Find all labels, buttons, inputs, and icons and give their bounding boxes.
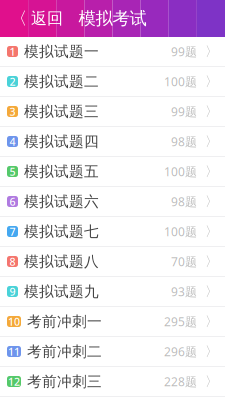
staticText: 〉 bbox=[205, 283, 218, 300]
staticText: 7 bbox=[9, 224, 15, 239]
staticText: 模拟试题七 bbox=[24, 222, 99, 240]
staticText: 296题 bbox=[164, 343, 197, 359]
staticText: 100题 bbox=[164, 163, 197, 179]
button[interactable]: 1 bbox=[0, 37, 225, 67]
staticText: 模拟试题九 bbox=[24, 282, 99, 300]
staticText: 70题 bbox=[171, 253, 197, 269]
staticText: 〉 bbox=[205, 163, 218, 180]
staticText: 〉 bbox=[205, 43, 218, 60]
staticText: 模拟试题四 bbox=[24, 132, 99, 150]
button[interactable]: 12 bbox=[0, 367, 225, 397]
staticText: 98题 bbox=[171, 193, 197, 209]
button[interactable]: 2 bbox=[0, 67, 225, 97]
staticText: 228题 bbox=[164, 373, 197, 389]
staticText: 11 bbox=[8, 344, 20, 359]
staticText: 〉 bbox=[205, 253, 218, 270]
staticText: 8 bbox=[9, 254, 15, 269]
staticText: 2 bbox=[9, 74, 15, 89]
staticText: 99题 bbox=[171, 103, 197, 119]
button[interactable]: 8 bbox=[0, 247, 225, 277]
button[interactable]: 7 bbox=[0, 217, 225, 247]
button[interactable]: 6 bbox=[0, 187, 225, 217]
staticText: 〉 bbox=[205, 73, 218, 90]
staticText: 10 bbox=[8, 314, 20, 329]
staticText: 模拟试题六 bbox=[24, 192, 99, 210]
staticText: 6 bbox=[9, 194, 15, 209]
staticText: 模拟试题五 bbox=[24, 162, 99, 180]
button[interactable]: 5 bbox=[0, 157, 225, 187]
staticText: 〈 bbox=[10, 8, 27, 29]
button[interactable]: 〈 bbox=[0, 0, 73, 37]
staticText: 〉 bbox=[205, 133, 218, 150]
staticText: 93题 bbox=[171, 283, 197, 299]
staticText: 〉 bbox=[205, 193, 218, 210]
button[interactable]: 11 bbox=[0, 337, 225, 367]
staticText: 〉 bbox=[205, 343, 218, 360]
staticText: 模拟试题二 bbox=[24, 72, 99, 90]
staticText: 返回 bbox=[31, 9, 63, 28]
staticText: 考前冲刺二 bbox=[27, 342, 102, 360]
staticText: 〉 bbox=[205, 313, 218, 330]
staticText: 模拟考试 bbox=[78, 8, 146, 29]
staticText: 模拟试题八 bbox=[24, 252, 99, 270]
staticText: 1 bbox=[9, 44, 15, 59]
staticText: 〉 bbox=[205, 103, 218, 120]
staticText: 〉 bbox=[205, 223, 218, 240]
staticText: 模拟试题三 bbox=[24, 102, 99, 120]
button[interactable]: 9 bbox=[0, 277, 225, 307]
button[interactable]: 4 bbox=[0, 127, 225, 157]
staticText: 模拟试题一 bbox=[24, 42, 99, 60]
staticText: 12 bbox=[8, 374, 20, 389]
staticText: 〉 bbox=[205, 373, 218, 390]
button[interactable]: 3 bbox=[0, 97, 225, 127]
staticText: 考前冲刺一 bbox=[27, 312, 102, 330]
staticText: 295题 bbox=[164, 313, 197, 329]
staticText: 3 bbox=[9, 104, 15, 119]
staticText: 考前冲刺三 bbox=[27, 372, 102, 390]
staticText: 5 bbox=[9, 164, 15, 179]
staticText: 9 bbox=[9, 284, 15, 299]
staticText: 99题 bbox=[171, 43, 197, 59]
staticText: 4 bbox=[9, 134, 15, 149]
staticText: 100题 bbox=[164, 73, 197, 89]
staticText: 98题 bbox=[171, 133, 197, 149]
button[interactable]: 10 bbox=[0, 307, 225, 337]
staticText: 100题 bbox=[164, 223, 197, 239]
